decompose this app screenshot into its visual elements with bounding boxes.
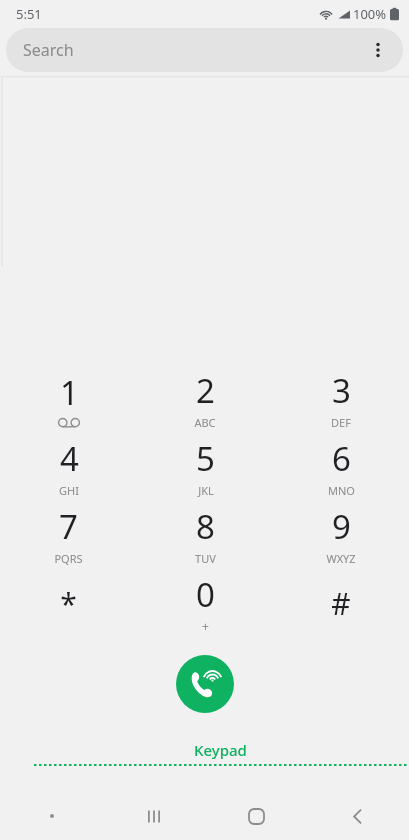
staticText: PQRS xyxy=(54,551,83,566)
button[interactable]: Call xyxy=(176,655,234,713)
staticText: JKL xyxy=(198,483,214,498)
staticText: TUV xyxy=(195,551,216,566)
button[interactable]: 2 xyxy=(137,367,273,435)
button[interactable]: 8 xyxy=(137,503,273,571)
staticText: 5:51 xyxy=(16,5,42,23)
staticText: DEF xyxy=(331,415,351,430)
staticText: 8 xyxy=(196,504,215,549)
staticText: GHI xyxy=(59,483,79,498)
button[interactable]: Keypad xyxy=(32,738,409,768)
button[interactable]: 4 xyxy=(0,435,137,503)
button[interactable]: Search xyxy=(6,28,403,72)
staticText: 6 xyxy=(332,436,351,481)
button[interactable]: 1 xyxy=(0,367,137,435)
button[interactable]: 6 xyxy=(273,435,409,503)
staticText: + xyxy=(202,618,209,634)
staticText: 7 xyxy=(59,504,78,549)
button[interactable]: 5 xyxy=(137,435,273,503)
staticText: 0 xyxy=(196,572,215,617)
button[interactable]: 0 xyxy=(137,571,273,639)
staticText: ABC xyxy=(194,415,216,430)
button[interactable]: 7 xyxy=(0,503,137,571)
staticText: 5 xyxy=(196,436,215,481)
button[interactable]: 3 xyxy=(273,367,409,435)
button[interactable]: * xyxy=(0,571,137,639)
button[interactable]: # xyxy=(273,571,409,639)
staticText: 1 xyxy=(60,370,79,415)
staticText: 3 xyxy=(332,368,351,413)
staticText: # xyxy=(331,583,351,624)
staticText: 9 xyxy=(332,504,351,549)
staticText: * xyxy=(60,583,77,624)
button[interactable]: Recents xyxy=(103,792,205,840)
staticText: 4 xyxy=(60,436,79,481)
button[interactable]: Home xyxy=(205,792,307,840)
staticText: MNO xyxy=(328,483,355,498)
staticText: WXYZ xyxy=(326,551,356,566)
button[interactable]: More options xyxy=(361,33,395,67)
staticText: Search xyxy=(23,39,74,61)
button[interactable]: Back xyxy=(307,792,409,840)
button[interactable]: 9 xyxy=(273,503,409,571)
staticText: 100% xyxy=(353,5,387,23)
staticText: Keypad xyxy=(194,740,247,760)
staticText: 2 xyxy=(196,368,215,413)
